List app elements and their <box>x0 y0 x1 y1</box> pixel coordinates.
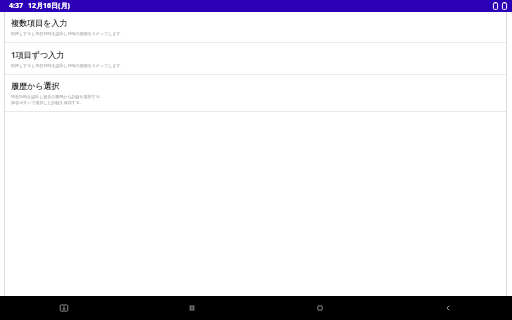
staticText: 長押しすると現在日時を設定し日時の画面をスキップします。 <box>11 63 125 68</box>
staticText: 複数項目を入力 <box>11 18 68 28</box>
staticText: 保存ボタンで選択した記録を保存する。 <box>11 100 84 105</box>
button[interactable]: Back <box>384 296 512 320</box>
button[interactable]: 複数項目を入力 <box>0 12 512 42</box>
button[interactable]: 履歴から選択 <box>0 75 512 111</box>
staticText: 12月16日(月) <box>28 1 70 11</box>
button[interactable]: Hide keyboard <box>0 296 128 320</box>
button[interactable]: Recents <box>128 296 256 320</box>
staticText: 1項目ずつ入力 <box>11 49 64 60</box>
staticText: 長押しすると現在日時を設定し日時の画面をスキップします。 <box>11 31 125 36</box>
staticText: 4:37 <box>9 1 23 11</box>
button[interactable]: 1項目ずつ入力 <box>0 43 512 74</box>
staticText: 現在日時を設定し過去の履歴から記録を選択する。 <box>11 94 104 99</box>
button[interactable]: Home <box>256 296 384 320</box>
staticText: 履歴から選択 <box>11 81 60 91</box>
